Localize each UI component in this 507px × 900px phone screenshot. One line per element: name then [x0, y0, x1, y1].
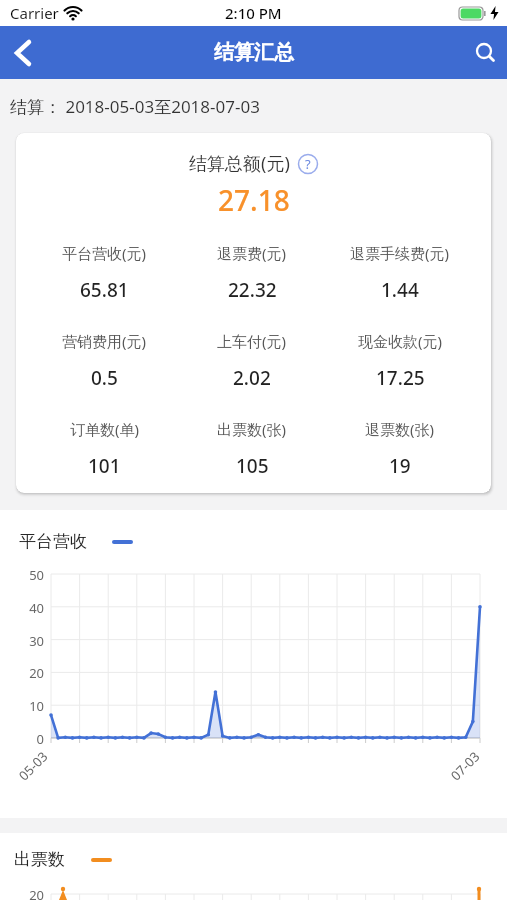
staticText: 05-03: [15, 748, 51, 784]
button[interactable]: [463, 31, 507, 75]
staticText: 50: [14, 566, 44, 584]
staticText: 40: [14, 599, 44, 617]
staticText: 30: [14, 632, 44, 650]
staticText: 出票数(张): [217, 419, 287, 439]
staticText: 退票费(元): [217, 243, 287, 263]
staticText: 退票数(张): [365, 419, 435, 439]
staticText: 0: [14, 730, 44, 748]
staticText: 结算汇总: [214, 40, 294, 65]
staticText: 现金收款(元): [358, 331, 443, 351]
button[interactable]: ?: [298, 154, 318, 174]
staticText: 出票数: [14, 849, 65, 870]
staticText: 结算总额(元): [189, 151, 290, 176]
staticText: 27.18: [218, 181, 290, 219]
staticText: ?: [305, 155, 311, 173]
staticText: 20: [14, 886, 44, 900]
staticText: 2:10 PM: [225, 3, 282, 23]
staticText: 平台营收: [19, 531, 87, 552]
staticText: 退票手续费(元): [350, 243, 450, 263]
staticText: 20: [14, 664, 44, 682]
staticText: 105: [236, 453, 269, 479]
staticText: 结算： 2018-05-03至2018-07-03: [10, 95, 260, 118]
staticText: 07-03: [447, 748, 483, 784]
staticText: 营销费用(元): [62, 331, 147, 351]
button[interactable]: [0, 31, 44, 75]
staticText: 0.5: [91, 365, 118, 391]
staticText: 订单数(单): [70, 419, 140, 439]
staticText: 22.32: [228, 277, 277, 303]
staticText: 上车付(元): [217, 331, 287, 351]
staticText: 17.25: [376, 365, 425, 391]
staticText: 2.02: [233, 365, 271, 391]
staticText: 1.44: [381, 277, 419, 303]
staticText: 10: [14, 697, 44, 715]
staticText: Carrier: [10, 3, 59, 23]
staticText: 65.81: [80, 277, 129, 303]
staticText: 101: [88, 453, 121, 479]
staticText: 19: [389, 453, 411, 479]
staticText: 平台营收(元): [62, 243, 147, 263]
